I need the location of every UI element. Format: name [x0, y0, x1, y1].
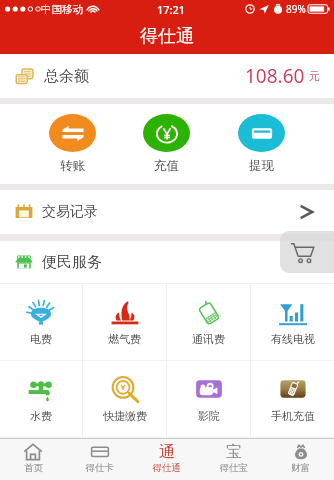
button[interactable]: 快捷缴费 — [83, 361, 166, 437]
button[interactable]: 交易记录 — [0, 190, 334, 234]
staticText: 得仕通 — [152, 462, 181, 474]
button[interactable]: 燃气费 — [83, 284, 166, 360]
staticText: 宝 — [226, 442, 242, 462]
button[interactable]: 水费 — [0, 361, 82, 437]
staticText: 有线电视 — [271, 332, 315, 346]
staticText: 充值 — [154, 158, 179, 174]
button[interactable]: 得仕卡 — [66, 439, 133, 480]
staticText: 108.60 — [245, 63, 305, 89]
button[interactable]: 通讯费 — [167, 284, 250, 360]
button[interactable]: 首页 — [0, 439, 66, 480]
button[interactable]: 购物车 — [280, 231, 334, 273]
staticText: 通讯费 — [192, 332, 225, 346]
staticText: 89% — [286, 2, 306, 16]
staticText: 中国移动 — [41, 3, 83, 16]
staticText: 交易记录 — [42, 203, 98, 221]
staticText: 得仕宝 — [219, 462, 248, 474]
button[interactable]: 影院 — [167, 361, 250, 437]
staticText: 首页 — [24, 462, 43, 474]
staticText: 影院 — [198, 409, 220, 423]
staticText: 提现 — [249, 158, 274, 174]
staticText: 便民服务 — [42, 253, 102, 272]
button[interactable]: 提现 — [214, 108, 309, 180]
staticText: 元 — [309, 69, 320, 83]
button[interactable]: 充值 — [119, 108, 214, 180]
staticText: 通 — [159, 442, 175, 462]
staticText: 电费 — [30, 332, 52, 346]
button[interactable]: 有线电视 — [251, 284, 334, 360]
staticText: 手机充值 — [271, 409, 315, 423]
button[interactable]: 通 — [133, 439, 200, 480]
button[interactable]: 宝 — [200, 439, 267, 480]
button[interactable]: 转账 — [25, 108, 119, 180]
staticText: 17:21 — [157, 2, 186, 17]
staticText: 财富 — [291, 462, 310, 474]
staticText: 得仕卡 — [85, 462, 114, 474]
staticText: 快捷缴费 — [103, 409, 147, 423]
button[interactable]: 电费 — [0, 284, 82, 360]
button[interactable]: 手机充值 — [251, 361, 334, 437]
staticText: 转账 — [60, 158, 85, 174]
staticText: 得仕通 — [140, 25, 194, 48]
staticText: 燃气费 — [108, 332, 141, 346]
button[interactable]: 财富 — [267, 439, 334, 480]
staticText: 水费 — [30, 409, 52, 423]
staticText: 总余额 — [44, 67, 89, 86]
